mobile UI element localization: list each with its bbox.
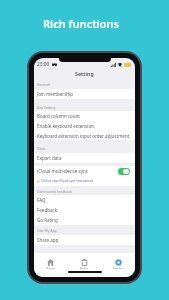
button[interactable]: Home [34, 253, 67, 269]
button[interactable]: Keyboard extension input order adjustmen… [34, 131, 135, 140]
button[interactable]: Export data [34, 153, 135, 163]
staticText: General [37, 82, 50, 87]
button[interactable]: iCloud multi-device sync [34, 166, 135, 176]
staticText: Click to view iCloud sync instructions [41, 179, 94, 183]
staticText: Setting [75, 70, 94, 77]
staticText: Board column count [37, 113, 80, 119]
staticText: Like My App [37, 228, 57, 233]
staticText: Go Rating [37, 217, 58, 223]
staticText: Data [37, 146, 45, 151]
staticText: Export data [37, 155, 62, 161]
button[interactable]: Enable keyboard extension [34, 121, 135, 131]
button[interactable]: FAQ [34, 195, 135, 205]
button[interactable]: Feedback [34, 205, 135, 215]
staticText: iCloud multi-device sync [37, 168, 88, 174]
button[interactable]: Setting [101, 253, 135, 269]
staticText: Community feedback [37, 189, 73, 194]
staticText: Feedback [37, 207, 58, 213]
staticText: Share app [37, 237, 59, 243]
button[interactable]: Board column count [34, 111, 135, 121]
staticText: Home [46, 267, 55, 270]
button[interactable]: Notes [67, 253, 101, 269]
staticText: Notes [80, 267, 89, 270]
staticText: Join membership [37, 91, 74, 97]
staticText: Keyboard extension input order adjustmen… [37, 133, 130, 139]
button[interactable]: Go Rating [34, 215, 135, 225]
staticText: Setting [113, 267, 124, 270]
button[interactable]: Join membership [34, 89, 135, 99]
staticText: Enable keyboard extension [37, 123, 94, 129]
staticText: FAQ [37, 197, 46, 203]
button[interactable]: Share app [34, 235, 135, 245]
staticText: Rich functions [43, 16, 120, 31]
button[interactable]: Click to view iCloud sync instructions [34, 176, 135, 185]
staticText: Key Setting [37, 105, 56, 110]
staticText: 23:00 [37, 61, 50, 68]
